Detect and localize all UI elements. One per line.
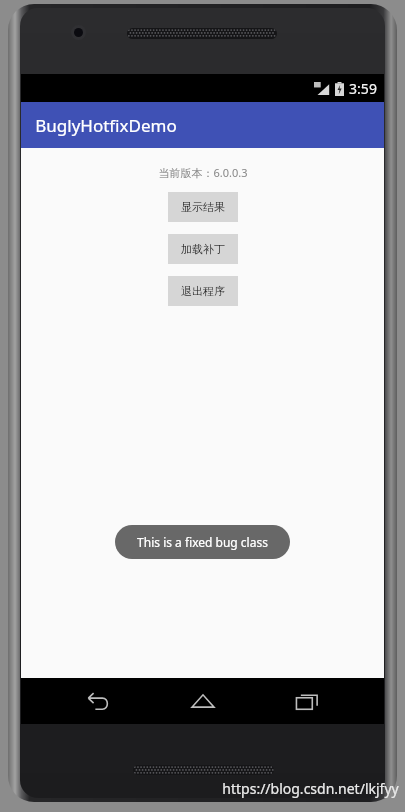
staticText: 3:59 <box>349 79 377 98</box>
staticText: 显示结果 <box>181 200 225 214</box>
button[interactable]: Recent apps <box>279 678 335 724</box>
staticText: 当前版本：6.0.0.3 <box>158 165 248 180</box>
button[interactable]: This is a fixed bug class <box>115 525 290 559</box>
staticText: This is a fixed bug class <box>137 534 268 550</box>
staticText: 加载补丁 <box>181 242 225 256</box>
button[interactable]: 退出程序 <box>168 276 238 306</box>
button[interactable]: 显示结果 <box>168 192 238 222</box>
button[interactable]: 加载补丁 <box>168 234 238 264</box>
button[interactable]: Back <box>70 678 126 724</box>
staticText: 退出程序 <box>181 284 225 298</box>
staticText: BuglyHotfixDemo <box>35 114 177 137</box>
button[interactable]: Home <box>175 678 231 724</box>
staticText: https://blog.csdn.net/lkjfyy <box>222 779 399 798</box>
